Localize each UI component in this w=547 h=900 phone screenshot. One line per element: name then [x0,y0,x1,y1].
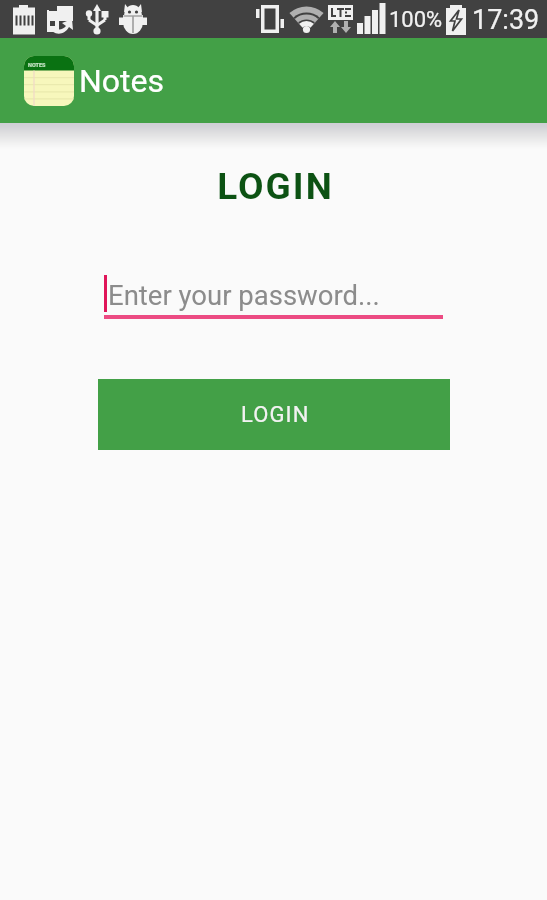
staticText: LOGIN [2,165,547,208]
staticText: NOTES [28,62,46,68]
staticText: LOGIN [241,402,310,428]
other: Notes app icon [24,56,74,106]
staticText: Enter your password... [108,279,380,311]
staticText: 17:39 [472,4,540,36]
button[interactable]: LOGIN [98,379,450,450]
staticText: 100% [389,7,443,33]
button[interactable]: Password input field [104,272,443,324]
staticText: Notes [79,62,165,100]
